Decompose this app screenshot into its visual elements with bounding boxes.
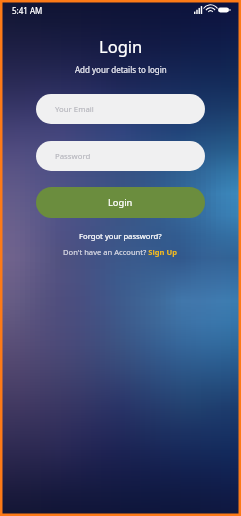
button[interactable]: Your Email <box>36 94 205 124</box>
staticText: Don't have an Account? Sign Up <box>63 247 178 257</box>
staticText: Login <box>99 35 143 57</box>
staticText: Login <box>108 196 133 209</box>
button[interactable]: Password <box>36 141 205 171</box>
button[interactable]: Forgot your password? <box>75 229 166 243</box>
staticText: 5:41 AM <box>12 5 43 16</box>
button[interactable]: Don't have an Account? Sign Up <box>59 245 182 259</box>
staticText: Add your details to login <box>75 64 167 75</box>
staticText: Your Email <box>55 104 94 115</box>
button[interactable]: Login <box>36 187 205 218</box>
staticText: Forgot your password? <box>79 231 162 241</box>
staticText: Password <box>55 151 91 162</box>
